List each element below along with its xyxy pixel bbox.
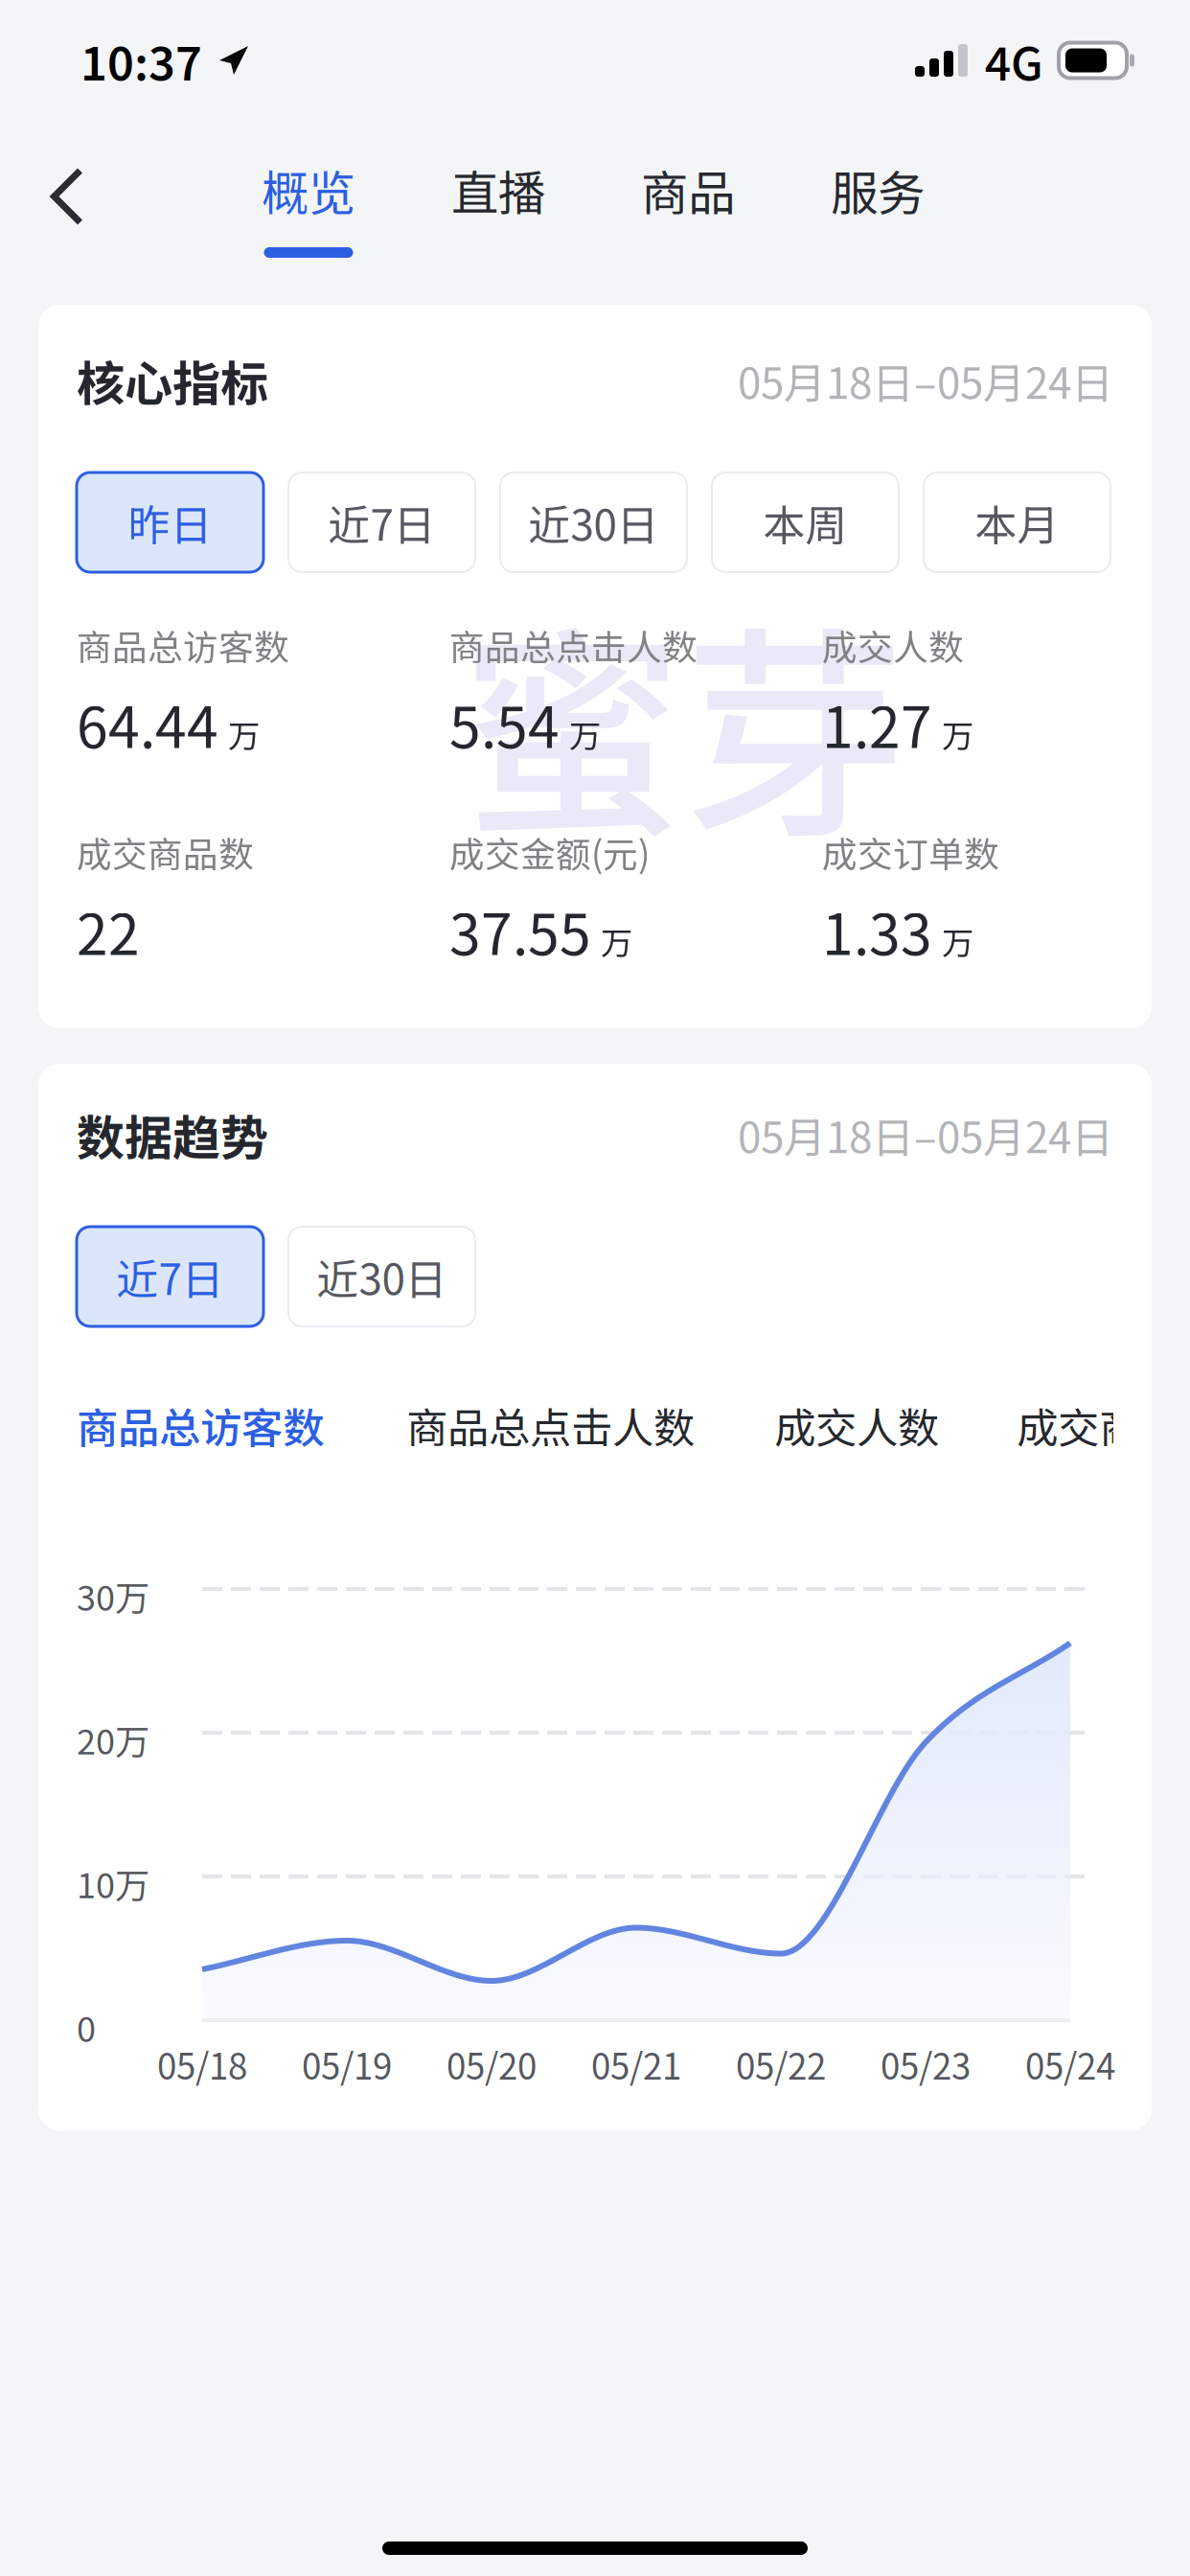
staticText: 成交订单数	[822, 827, 999, 877]
staticText: 05/23	[881, 2039, 971, 2090]
staticText: 近7日	[116, 1246, 224, 1307]
button[interactable]: 概览	[214, 160, 403, 283]
button[interactable]: 近7日	[77, 1227, 263, 1326]
staticText: 30万	[77, 1571, 149, 1621]
staticText: 成交人数	[822, 620, 964, 670]
staticText: 商品总访客数	[77, 1395, 324, 1455]
staticText: 本周	[763, 492, 847, 553]
staticText: 服务	[831, 156, 925, 224]
staticText: 近7日	[328, 492, 435, 553]
staticText: 成交金额(元)	[449, 827, 650, 877]
staticText: 64.44	[77, 683, 218, 764]
button[interactable]: 近30日	[500, 472, 687, 572]
button[interactable]: 服务	[783, 160, 973, 283]
staticText: 05/18	[157, 2039, 247, 2090]
staticText: 数据趋势	[77, 1100, 268, 1169]
staticText: 商品总点击人数	[449, 620, 698, 670]
staticText: 商品	[641, 156, 735, 224]
staticText: 5.54	[449, 683, 560, 764]
staticText: 10:37	[80, 27, 202, 94]
staticText: 商品总访客数	[77, 620, 289, 670]
staticText: 核心指标	[77, 346, 268, 415]
staticText: 万	[942, 711, 973, 757]
staticText: 1.27	[822, 683, 932, 764]
staticText: 05/20	[446, 2039, 537, 2090]
staticText: 成交商品	[1017, 1395, 1181, 1455]
staticText: 37.55	[449, 890, 591, 971]
button[interactable]: 商品总访客数	[77, 1399, 324, 1497]
button[interactable]: 昨日	[77, 472, 263, 572]
staticText: 万	[942, 918, 973, 964]
button[interactable]: 近7日	[288, 472, 475, 572]
staticText: 20万	[77, 1714, 149, 1764]
button[interactable]: 本周	[712, 472, 899, 572]
staticText: 0	[77, 2002, 96, 2052]
staticText: 1.33	[822, 890, 932, 971]
staticText: 10万	[77, 1858, 149, 1908]
button[interactable]: 近30日	[288, 1227, 475, 1326]
staticText: 本月	[975, 492, 1059, 553]
staticText: 成交人数	[774, 1395, 939, 1455]
staticText: 概览	[262, 156, 355, 224]
staticText: 万	[601, 918, 632, 964]
staticText: 万	[228, 711, 260, 757]
staticText: 万	[569, 711, 601, 757]
button[interactable]: 直播	[403, 160, 593, 283]
staticText: 昨日	[128, 492, 212, 553]
staticText: 蜜芽	[460, 558, 906, 882]
staticText: 05月18日–05月24日	[738, 350, 1113, 411]
button[interactable]: 商品总点击人数	[406, 1399, 695, 1451]
button[interactable]: 成交人数	[774, 1399, 939, 1451]
staticText: 05/24	[1025, 2039, 1115, 2090]
staticText: 05月18日–05月24日	[738, 1104, 1113, 1165]
staticText: 近30日	[528, 492, 659, 553]
staticText: 22	[77, 890, 140, 971]
staticText: 成交商品数	[77, 827, 254, 877]
button[interactable]: 商品	[593, 160, 783, 283]
staticText: 05/22	[736, 2039, 826, 2090]
button[interactable]: 本月	[924, 472, 1110, 572]
staticText: 4G	[985, 27, 1043, 94]
staticText: 商品总点击人数	[406, 1395, 695, 1455]
staticText: 05/19	[302, 2039, 392, 2090]
staticText: 近30日	[317, 1246, 447, 1307]
staticText: 05/21	[591, 2039, 681, 2090]
staticText: 直播	[451, 156, 545, 224]
button[interactable]: Back	[17, 162, 117, 281]
